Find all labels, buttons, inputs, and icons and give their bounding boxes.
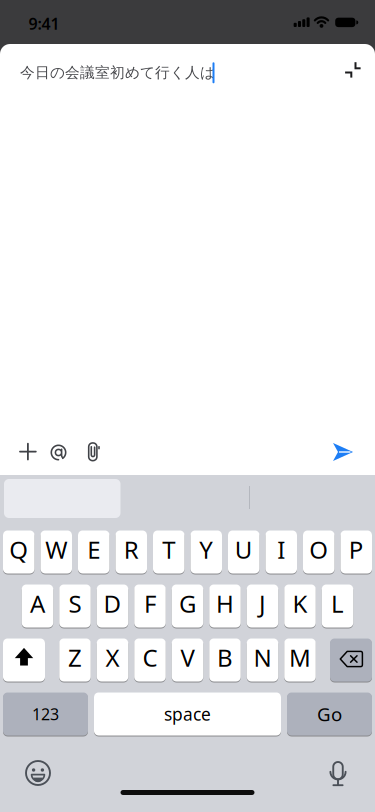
staticText: 123 [32, 703, 59, 725]
button[interactable]: S [59, 584, 91, 627]
button[interactable]: M [284, 638, 316, 681]
button[interactable]: J [247, 584, 278, 627]
button[interactable]: Numbers [3, 692, 88, 735]
staticText: T [162, 534, 175, 565]
staticText: 今日の会議室初めて行く人は [20, 64, 215, 82]
button[interactable]: F [134, 584, 166, 627]
staticText: R [124, 534, 139, 565]
staticText: W [45, 534, 67, 565]
staticText: L [331, 588, 344, 619]
staticText: Q [9, 534, 28, 565]
button[interactable]: Attach file [0, 0, 375, 812]
staticText: I [277, 534, 285, 565]
button[interactable]: I [265, 530, 297, 573]
button[interactable]: V [172, 638, 203, 681]
staticText: Y [199, 534, 213, 565]
staticText: J [259, 588, 266, 619]
staticText: K [292, 588, 307, 619]
button[interactable]: K [284, 584, 316, 627]
staticText: P [349, 534, 364, 565]
button[interactable]: Go [287, 692, 372, 735]
button[interactable]: W [40, 530, 72, 573]
staticText: V [180, 642, 194, 673]
button[interactable]: A [22, 584, 53, 627]
button[interactable]: Add attachment [0, 0, 375, 812]
staticText: H [216, 588, 234, 619]
button[interactable]: Q [3, 530, 34, 573]
staticText: 9:41 [28, 13, 59, 34]
button[interactable]: Shift [3, 638, 45, 681]
staticText: M [289, 642, 311, 673]
staticText: Z [68, 642, 82, 673]
button[interactable]: Emoji [0, 0, 375, 812]
staticText: O [309, 534, 328, 565]
staticText: F [144, 588, 156, 619]
button[interactable]: L [322, 584, 353, 627]
staticText: E [87, 534, 100, 565]
staticText: space [164, 702, 211, 725]
button[interactable]: O [303, 530, 334, 573]
staticText: Go [317, 702, 342, 726]
staticText: U [235, 534, 253, 565]
button[interactable]: G [172, 584, 203, 627]
staticText: S [68, 588, 81, 619]
button[interactable]: Y [190, 530, 222, 573]
button[interactable]: H [209, 584, 241, 627]
button[interactable]: Send [0, 0, 375, 812]
button[interactable]: C [134, 638, 166, 681]
button[interactable]: Delete [330, 638, 372, 681]
button[interactable]: U [228, 530, 259, 573]
staticText: N [253, 642, 271, 673]
button[interactable]: X [97, 638, 128, 681]
staticText: C [142, 642, 157, 673]
button[interactable]: B [209, 638, 241, 681]
button[interactable]: T [153, 530, 184, 573]
button[interactable]: N [247, 638, 278, 681]
staticText: X [105, 642, 119, 673]
staticText: B [217, 642, 233, 673]
button[interactable]: Collapse compose [0, 0, 375, 812]
button[interactable]: Z [59, 638, 91, 681]
button[interactable]: E [78, 530, 109, 573]
staticText: D [103, 588, 121, 619]
button[interactable]: R [115, 530, 147, 573]
staticText: A [30, 588, 45, 619]
button[interactable]: Dictation [0, 0, 375, 812]
button[interactable]: Space [94, 692, 281, 735]
button[interactable]: Mention someone [0, 0, 375, 812]
staticText: G [179, 588, 196, 619]
button[interactable]: P [340, 530, 372, 573]
button[interactable]: D [97, 584, 128, 627]
